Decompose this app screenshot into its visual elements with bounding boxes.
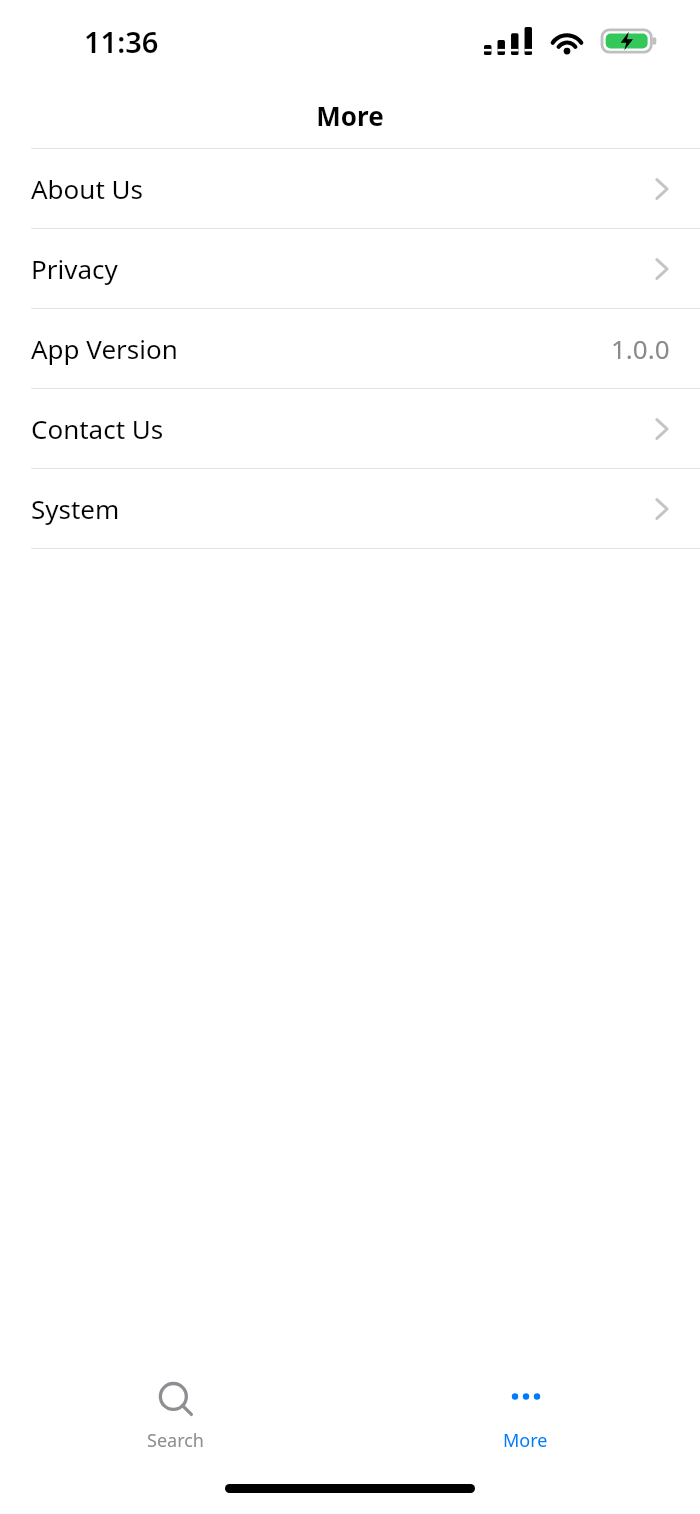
button[interactable]: App Version <box>0 309 700 388</box>
staticText: 1.0.0 <box>611 331 670 366</box>
staticText: More <box>503 1428 548 1453</box>
staticText: Search <box>147 1428 204 1453</box>
other: More <box>504 1378 548 1422</box>
button[interactable]: About Us <box>0 149 700 228</box>
button[interactable]: Privacy <box>0 229 700 308</box>
staticText: More <box>316 98 384 133</box>
staticText: Privacy <box>31 251 118 286</box>
staticText: About Us <box>31 171 144 206</box>
staticText: Contact Us <box>31 411 164 446</box>
button[interactable]: Contact Us <box>0 389 700 468</box>
other: Search <box>154 1378 198 1422</box>
staticText: System <box>31 491 120 526</box>
staticText: App Version <box>31 331 178 366</box>
button[interactable]: Search <box>0 1370 350 1470</box>
staticText: 11:36 <box>84 22 159 61</box>
button[interactable]: System <box>0 469 700 548</box>
button[interactable]: More <box>350 1370 700 1470</box>
